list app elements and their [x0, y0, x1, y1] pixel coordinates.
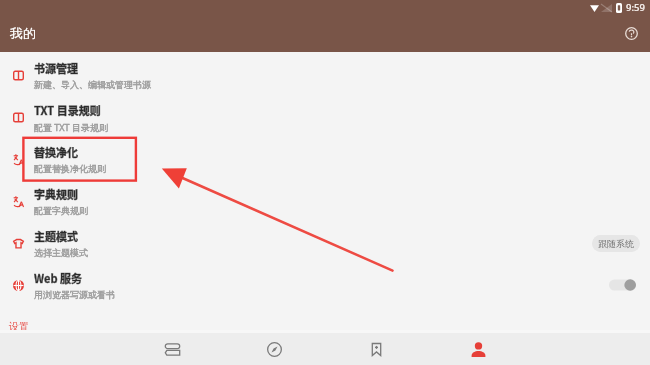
staticText: 主题模式 — [34, 228, 78, 244]
staticText: 配置替换净化规则 — [34, 163, 106, 174]
staticText: 配置字典规则 — [34, 205, 88, 216]
button[interactable]: 字典规则 — [0, 180, 650, 222]
button[interactable]: 书源管理 — [0, 54, 650, 96]
staticText: 配置 TXT 目录规则 — [34, 121, 108, 133]
button[interactable]: Web service toggle — [609, 276, 636, 294]
staticText: 字典规则 — [34, 186, 78, 202]
button[interactable]: Subscribe — [325, 333, 427, 365]
staticText: 配置字典规则 — [34, 205, 88, 216]
staticText: 字典规则 — [34, 186, 78, 202]
staticText: 选择主题模式 — [34, 247, 88, 258]
staticText: 选择主题模式 — [34, 247, 88, 258]
staticText: Web 服务 — [34, 270, 83, 286]
button[interactable]: TXT 目录规则 — [0, 96, 650, 138]
button[interactable]: Bookshelf — [121, 333, 223, 365]
staticText: 书源管理 — [34, 60, 78, 76]
button[interactable]: Web 服务 — [0, 264, 650, 306]
staticText: 9:59 — [626, 1, 645, 14]
staticText: 用浏览器写源或看书 — [34, 289, 115, 300]
staticText: 替换净化 — [34, 144, 78, 160]
button[interactable]: 跟随系统 — [592, 235, 640, 252]
staticText: 书源管理 — [34, 60, 78, 76]
staticText: 设置 — [9, 320, 29, 333]
staticText: 用浏览器写源或看书 — [34, 289, 115, 300]
button[interactable]: Help — [618, 20, 644, 46]
staticText: 主题模式 — [34, 228, 78, 244]
staticText: 我的 — [10, 25, 36, 41]
staticText: TXT 目录规则 — [34, 102, 101, 118]
staticText: 替换净化 — [34, 144, 78, 160]
staticText: Web 服务 — [34, 270, 83, 286]
button[interactable]: 替换净化 — [0, 138, 650, 180]
button[interactable]: My — [427, 333, 529, 365]
staticText: 新建、导入、编辑或管理书源 — [34, 79, 151, 90]
staticText: 跟随系统 — [598, 238, 634, 249]
staticText: TXT 目录规则 — [34, 102, 101, 118]
button[interactable]: 主题模式 — [0, 222, 650, 264]
staticText: 配置替换净化规则 — [34, 163, 106, 174]
button[interactable]: Explore — [223, 333, 325, 365]
staticText: 配置 TXT 目录规则 — [34, 121, 108, 133]
staticText: 新建、导入、编辑或管理书源 — [34, 79, 151, 90]
